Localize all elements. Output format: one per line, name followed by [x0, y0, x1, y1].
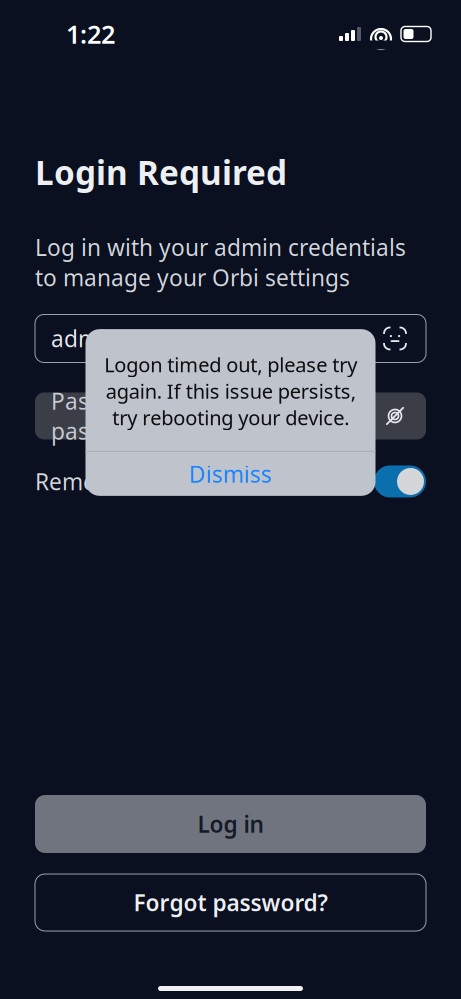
- staticText: admin: [51, 323, 119, 353]
- button[interactable]: Face ID: [380, 323, 410, 353]
- button[interactable]: Show password: [380, 401, 410, 431]
- staticText: Log in with your admin credentials to ma…: [35, 232, 406, 292]
- staticText: Forgot password?: [133, 887, 327, 917]
- button[interactable]: Remember me toggle: [374, 465, 426, 497]
- staticText: Password (Default is password): [51, 386, 270, 446]
- staticText: Dismiss: [189, 459, 272, 489]
- staticText: Log in: [197, 809, 263, 839]
- staticText: Login Required: [35, 150, 287, 194]
- button[interactable]: Log in: [35, 795, 426, 853]
- staticText: Remember me: [35, 466, 193, 496]
- staticText: 1:22: [66, 17, 115, 51]
- staticText: Logon timed out, please try again. If th…: [104, 351, 357, 431]
- button[interactable]: Dismiss: [85, 452, 375, 496]
- button[interactable]: Forgot password?: [35, 874, 426, 931]
